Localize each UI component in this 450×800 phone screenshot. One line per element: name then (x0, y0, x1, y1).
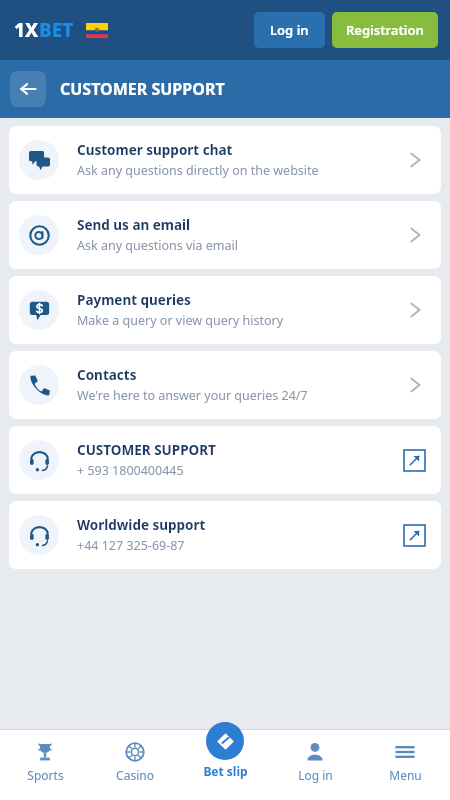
staticText: We're here to answer your queries 24/7 (77, 387, 308, 404)
button[interactable]: Sports (0, 730, 90, 800)
staticText: Log in (270, 21, 309, 39)
button[interactable]: Contacts (9, 351, 441, 419)
button[interactable]: CUSTOMER SUPPORT (9, 426, 441, 494)
staticText: Payment queries (77, 291, 191, 309)
button[interactable]: Log in (270, 730, 360, 800)
other: Open (404, 525, 425, 546)
button[interactable]: Back (10, 71, 46, 107)
staticText: Log in (298, 767, 333, 783)
staticText: Casino (116, 767, 154, 783)
other: Open (410, 151, 421, 169)
staticText: Worldwide support (77, 516, 206, 534)
staticText: Ask any questions directly on the websit… (77, 162, 319, 179)
staticText: BET (39, 17, 74, 43)
button[interactable]: Bet slip (180, 730, 270, 800)
staticText: Sports (27, 767, 64, 783)
other: Ecuador (86, 23, 108, 38)
other: Open (410, 301, 421, 319)
staticText: Customer support chat (77, 141, 233, 159)
staticText: Menu (389, 767, 422, 783)
staticText: CUSTOMER SUPPORT (60, 78, 225, 100)
staticText: Contacts (77, 366, 137, 384)
staticText: Send us an email (77, 216, 191, 234)
staticText: Make a query or view query history (77, 312, 284, 329)
button[interactable]: Registration (332, 12, 438, 48)
staticText: CUSTOMER SUPPORT (77, 441, 216, 459)
staticText: +44 127 325-69-87 (77, 537, 185, 554)
button[interactable]: Payment queries (9, 276, 441, 344)
other: Open (410, 226, 421, 244)
other: Open (410, 376, 421, 394)
button[interactable]: Casino (90, 730, 180, 800)
staticText: Registration (346, 21, 424, 39)
staticText: Ask any questions via email (77, 237, 239, 254)
button[interactable]: Send us an email (9, 201, 441, 269)
button[interactable]: 1X (14, 17, 74, 43)
staticText: 1X (14, 17, 39, 43)
other: Open (404, 450, 425, 471)
button[interactable]: Menu (360, 730, 450, 800)
button[interactable]: Customer support chat (9, 126, 441, 194)
button[interactable]: Worldwide support (9, 501, 441, 569)
staticText: Bet slip (203, 763, 248, 779)
staticText: + 593 1800400445 (77, 462, 184, 479)
button[interactable]: Log in (254, 12, 325, 48)
